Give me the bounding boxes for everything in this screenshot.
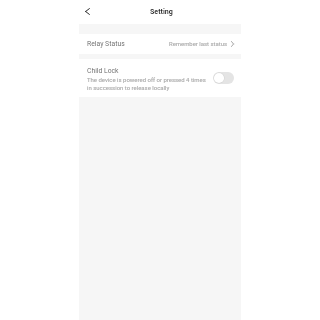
button[interactable]: Relay Status <box>79 34 241 54</box>
staticText: The device is powered off or pressed 4 t… <box>87 76 206 92</box>
staticText: Child Lock <box>87 67 119 75</box>
button[interactable]: Back <box>79 3 95 19</box>
staticText: Relay Status <box>87 40 125 48</box>
staticText: Setting <box>150 7 173 15</box>
button[interactable]: Child Lock <box>79 59 241 97</box>
button[interactable]: Child Lock toggle <box>213 72 234 84</box>
staticText: Remember last status <box>169 40 228 47</box>
